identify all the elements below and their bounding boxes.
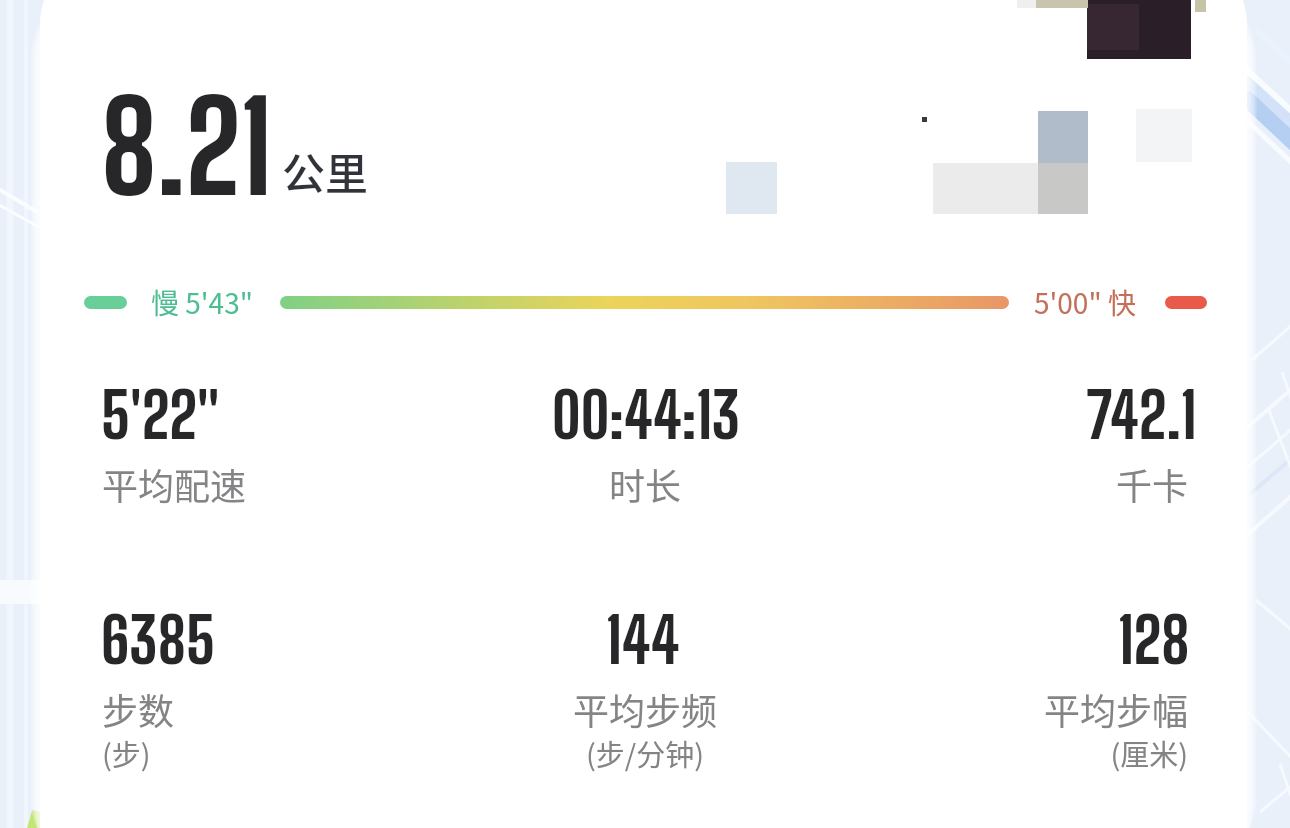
staticText: 8.21 (101, 72, 271, 208)
staticText: 6385 (101, 602, 215, 677)
staticText: 平均配速 (102, 458, 247, 510)
button[interactable]: 00:44:13 (465, 374, 825, 504)
staticText: 慢 5'43" (151, 282, 253, 323)
staticText: 时长 (465, 458, 825, 510)
button[interactable]: 128 (839, 599, 1199, 779)
button[interactable]: 742.1 (839, 374, 1199, 504)
button[interactable]: 8.21 (96, 78, 386, 214)
staticText: 5'00" 快 (1034, 282, 1136, 323)
staticText: 144 (606, 602, 680, 677)
staticText: 00:44:13 (552, 377, 741, 452)
staticText: (步/分钟) (465, 732, 825, 774)
staticText: 5'22" (101, 377, 220, 452)
staticText: 千卡 (828, 458, 1188, 510)
staticText: 平均步幅 (828, 683, 1188, 735)
button[interactable]: 144 (465, 599, 825, 779)
staticText: 公里 (282, 140, 368, 202)
staticText: 742.1 (1086, 377, 1197, 452)
staticText: (步) (102, 732, 151, 774)
button[interactable]: Pace range (70, 272, 1220, 334)
staticText: (厘米) (828, 732, 1188, 774)
staticText: 128 (1118, 602, 1190, 677)
staticText: 步数 (102, 683, 175, 735)
staticText: 平均步频 (465, 683, 825, 735)
button[interactable]: 6385 (90, 599, 450, 779)
button[interactable]: 5'22" (90, 374, 450, 504)
